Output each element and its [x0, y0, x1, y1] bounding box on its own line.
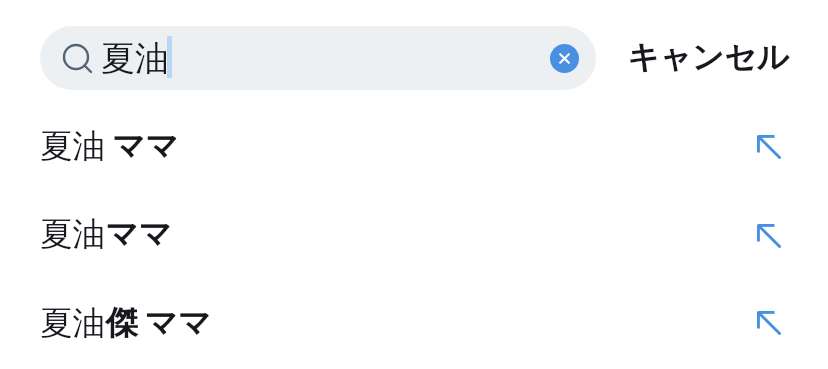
button[interactable]: Insert suggestion into search box — [740, 204, 800, 264]
staticText: 夏油 ママ — [40, 126, 179, 167]
button[interactable]: 夏油ママ — [0, 189, 828, 278]
button[interactable]: 夏油 ママ — [0, 98, 828, 187]
button[interactable]: Clear text — [538, 32, 590, 84]
staticText: 夏油ママ — [40, 214, 172, 255]
button[interactable]: 夏油傑 ママ — [0, 275, 828, 364]
staticText: 夏油 — [101, 37, 169, 80]
staticText: キャンセル — [627, 38, 789, 78]
button[interactable]: Insert suggestion into search box — [740, 113, 800, 173]
button[interactable]: Insert suggestion into search box — [740, 290, 800, 350]
button[interactable]: キャンセル — [613, 26, 803, 90]
staticText: 夏油傑 ママ — [40, 303, 211, 344]
button[interactable]: 夏油 — [40, 26, 596, 90]
